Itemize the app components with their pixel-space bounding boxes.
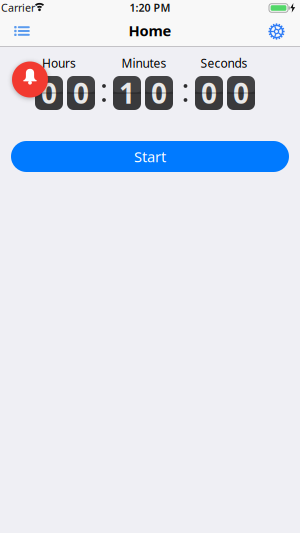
staticText: 0 <box>41 74 57 112</box>
staticText: 1 <box>119 74 135 112</box>
staticText: Carrier <box>1 0 35 15</box>
staticText: Home <box>128 21 171 40</box>
button[interactable]: History <box>14 26 30 36</box>
staticText: 0 <box>73 74 89 112</box>
staticText: 0 <box>201 74 217 112</box>
staticText: 0 <box>233 74 249 112</box>
button[interactable]: Start <box>11 141 289 172</box>
staticText: Start <box>134 147 166 166</box>
button[interactable]: Notifications <box>10 59 50 99</box>
staticText: Seconds <box>200 55 247 71</box>
staticText: 1:20 PM <box>129 0 170 15</box>
button[interactable]: Settings <box>267 22 285 40</box>
staticText: 0 <box>151 74 167 112</box>
staticText: Hours <box>42 55 76 71</box>
staticText: Minutes <box>121 55 166 71</box>
